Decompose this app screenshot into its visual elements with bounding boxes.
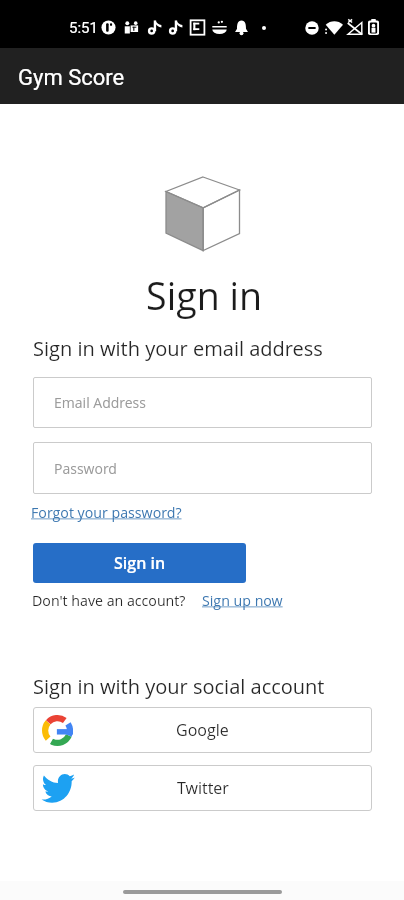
button[interactable]: Forgot your password?	[31, 503, 182, 522]
button[interactable]: Sign in	[33, 543, 246, 583]
staticText: Gym Score	[18, 65, 125, 91]
staticText: Google	[176, 719, 229, 741]
staticText: Sign in	[2, 270, 404, 321]
button[interactable]: Sign up now	[202, 591, 283, 610]
staticText: Email Address	[54, 393, 146, 412]
staticText: Sign in with your email address	[33, 335, 323, 362]
button[interactable]: Password	[33, 442, 372, 494]
staticText: Don't have an account?	[32, 591, 186, 610]
staticText: Sign in with your social account	[33, 673, 325, 700]
button[interactable]: Google	[33, 707, 372, 753]
staticText: Password	[54, 459, 117, 478]
staticText: Sign in	[114, 552, 166, 574]
staticText: 5:51	[69, 19, 98, 37]
button[interactable]: Email Address	[33, 377, 372, 428]
button[interactable]: Twitter	[33, 765, 372, 811]
staticText: Twitter	[177, 777, 229, 799]
